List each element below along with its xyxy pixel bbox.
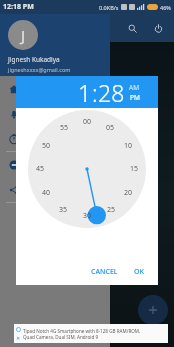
staticText: 45: [36, 164, 45, 174]
staticText: 1: [78, 77, 92, 108]
staticText: 12:18 PM: [3, 2, 34, 12]
button[interactable]: AM: [129, 83, 140, 92]
button[interactable]: ✕: [14, 324, 168, 343]
staticText: 55: [60, 123, 69, 133]
button[interactable]: Drawer item: [0, 152, 110, 177]
staticText: Quad Camera, Dual SIM, Android 9: [23, 334, 99, 340]
staticText: jigneshxxxx@gmail.com: [8, 66, 71, 73]
staticText: 35: [59, 205, 68, 215]
staticText: OK: [134, 267, 144, 277]
staticText: 20: [124, 188, 133, 198]
staticText: 28: [98, 77, 125, 108]
button[interactable]: PM: [130, 93, 140, 102]
button[interactable]: Power: [148, 18, 168, 38]
staticText: 10: [124, 141, 133, 151]
button[interactable]: Drawer item: [0, 126, 110, 151]
button[interactable]: 00: [28, 110, 146, 228]
staticText: :: [92, 77, 98, 108]
staticText: 05: [106, 123, 115, 133]
staticText: Jignesh Kukadiya: [8, 55, 60, 64]
button[interactable]: OK: [130, 264, 148, 280]
button[interactable]: Add: [138, 295, 168, 325]
staticText: Tipad Notch 4G Smartphone with 8-128 GB …: [23, 328, 141, 334]
staticText: 0.0KB/s: [99, 4, 119, 11]
staticText: 40: [42, 188, 51, 198]
button[interactable]: Drawer item: [0, 101, 110, 126]
staticText: 25: [107, 205, 116, 215]
button[interactable]: Search: [122, 18, 142, 38]
staticText: 46%: [160, 4, 171, 11]
staticText: 00: [83, 117, 92, 127]
button[interactable]: 1: [78, 77, 125, 108]
staticText: 30: [83, 211, 92, 221]
button[interactable]: CANCEL: [87, 264, 122, 280]
staticText: 50: [42, 141, 51, 151]
staticText: CANCEL: [91, 267, 118, 277]
staticText: J: [21, 25, 26, 45]
staticText: PM: [130, 93, 140, 102]
staticText: 15: [130, 164, 139, 174]
button[interactable]: Drawer item: [0, 177, 110, 202]
staticText: AM: [129, 83, 140, 92]
staticText: ✕: [16, 335, 21, 341]
button[interactable]: Drawer item: [0, 76, 110, 101]
